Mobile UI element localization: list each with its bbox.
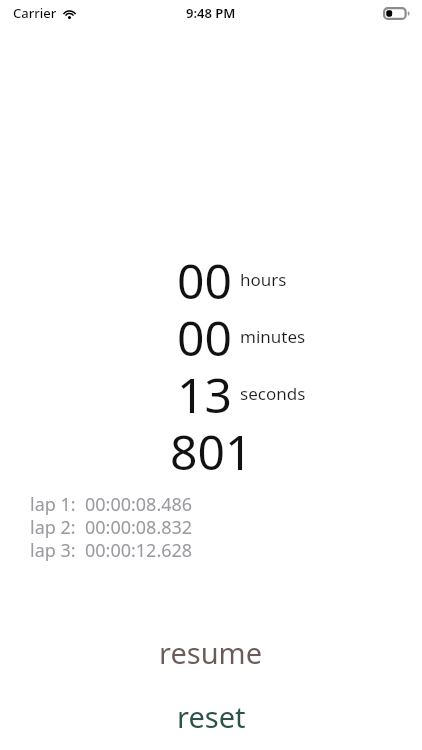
button[interactable]: reset bbox=[0, 692, 422, 740]
button[interactable]: resume bbox=[0, 626, 422, 678]
staticText: lap 3: 00:00:12.628 bbox=[30, 538, 193, 561]
staticText: hours bbox=[240, 268, 287, 291]
staticText: 13 bbox=[177, 362, 232, 419]
staticText: 801 bbox=[170, 419, 253, 476]
staticText: seconds bbox=[240, 382, 306, 405]
staticText: 00 bbox=[177, 248, 232, 305]
staticText: minutes bbox=[240, 325, 306, 348]
staticText: resume bbox=[159, 633, 263, 672]
staticText: 9:48 PM bbox=[186, 4, 236, 22]
staticText: reset bbox=[177, 697, 246, 736]
staticText: 00 bbox=[177, 305, 232, 362]
staticText: lap 2: 00:00:08.832 bbox=[30, 515, 193, 538]
staticText: Carrier bbox=[13, 4, 57, 22]
staticText: lap 1: 00:00:08.486 bbox=[30, 492, 193, 515]
